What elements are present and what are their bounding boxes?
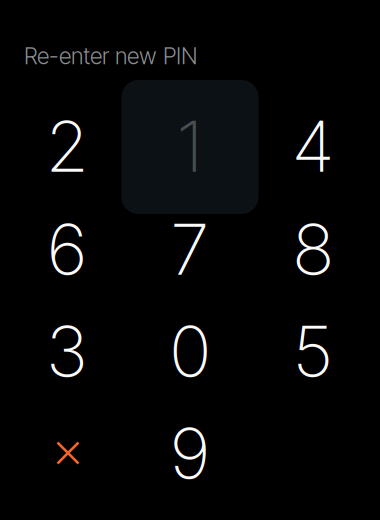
button[interactable]: 1 xyxy=(121,81,258,211)
button[interactable]: 9 xyxy=(121,388,258,518)
staticText: 9 xyxy=(170,410,210,496)
button[interactable]: 2 xyxy=(0,81,135,211)
staticText: 1 xyxy=(177,103,203,189)
staticText: 6 xyxy=(47,206,87,292)
button[interactable]: 8 xyxy=(244,184,380,314)
staticText: 5 xyxy=(293,308,333,394)
staticText: 2 xyxy=(46,103,88,189)
staticText: 7 xyxy=(171,206,209,292)
staticText: 0 xyxy=(169,308,210,394)
staticText: 4 xyxy=(292,103,334,189)
button[interactable]: Delete xyxy=(0,388,136,518)
button[interactable]: 5 xyxy=(244,286,380,416)
staticText: Re-enter new PIN xyxy=(24,42,198,70)
button[interactable]: 0 xyxy=(121,286,258,416)
staticText: 8 xyxy=(292,206,333,292)
button[interactable]: 7 xyxy=(121,184,258,314)
staticText: 3 xyxy=(45,308,88,394)
button[interactable]: 4 xyxy=(244,81,380,211)
button[interactable]: 6 xyxy=(0,184,135,314)
button[interactable]: 3 xyxy=(0,286,135,416)
